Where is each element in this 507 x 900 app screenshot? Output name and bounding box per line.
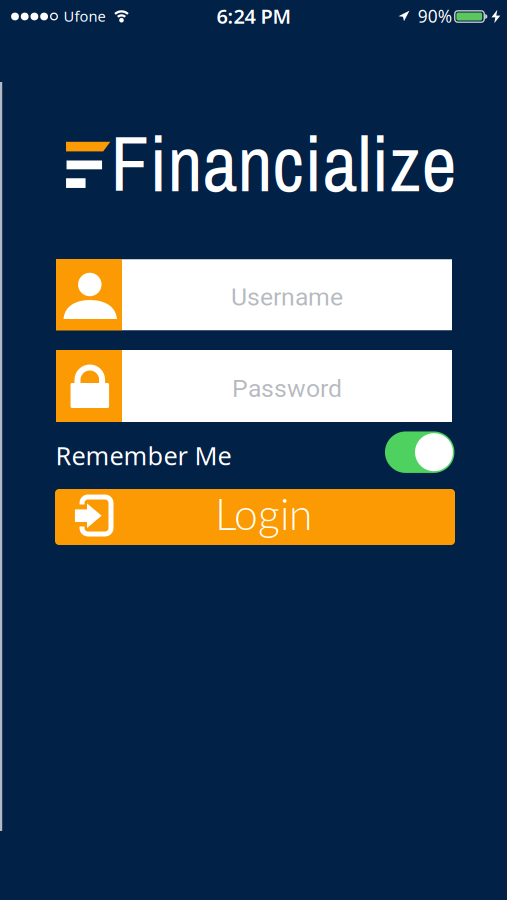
button[interactable]: Remember Me xyxy=(385,431,455,473)
staticText: Ufone xyxy=(63,6,105,26)
staticText: 90% xyxy=(418,4,452,27)
staticText: 6:24 PM xyxy=(216,3,291,29)
staticText: Password xyxy=(232,374,342,403)
staticText: Financialize xyxy=(110,112,456,215)
button[interactable]: Login xyxy=(55,489,455,545)
button[interactable]: Password xyxy=(56,350,452,422)
staticText: Login xyxy=(215,488,312,539)
staticText: Username xyxy=(231,282,343,312)
staticText: Remember Me xyxy=(55,439,231,472)
button[interactable]: Username xyxy=(56,259,452,330)
